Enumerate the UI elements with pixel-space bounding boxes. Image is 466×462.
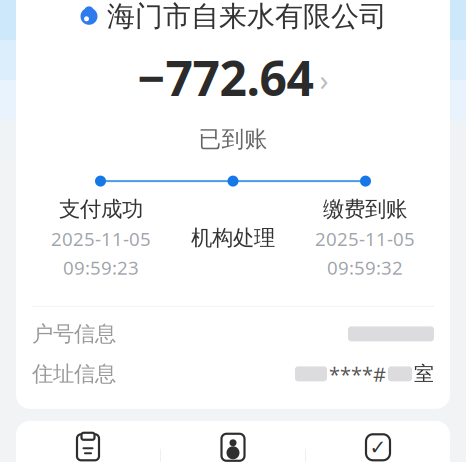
staticText: ✓: [369, 436, 386, 459]
staticText: 缴费到账: [323, 196, 407, 222]
staticText: 海门市自来水有限公司: [107, 0, 387, 33]
staticText: 2025-11-05: [315, 226, 415, 251]
staticText: 户号信息: [32, 321, 116, 347]
staticText: 住址信息: [32, 361, 116, 387]
staticText: 2025-11-05: [51, 226, 151, 251]
staticText: ›: [319, 60, 328, 99]
staticText: ****#: [329, 361, 386, 387]
button[interactable]: ✓: [306, 421, 450, 462]
button[interactable]: −772.64: [16, 33, 450, 109]
staticText: 09:59:23: [63, 255, 139, 280]
staticText: 09:59:32: [327, 255, 403, 280]
staticText: 机构处理: [191, 225, 275, 251]
staticText: −772.64: [137, 45, 313, 109]
button[interactable]: 缴费凭证: [161, 421, 305, 462]
staticText: 室: [414, 362, 434, 386]
button[interactable]: 缴费记录: [16, 421, 160, 462]
staticText: 已到账: [198, 125, 267, 153]
staticText: 支付成功: [59, 196, 143, 222]
